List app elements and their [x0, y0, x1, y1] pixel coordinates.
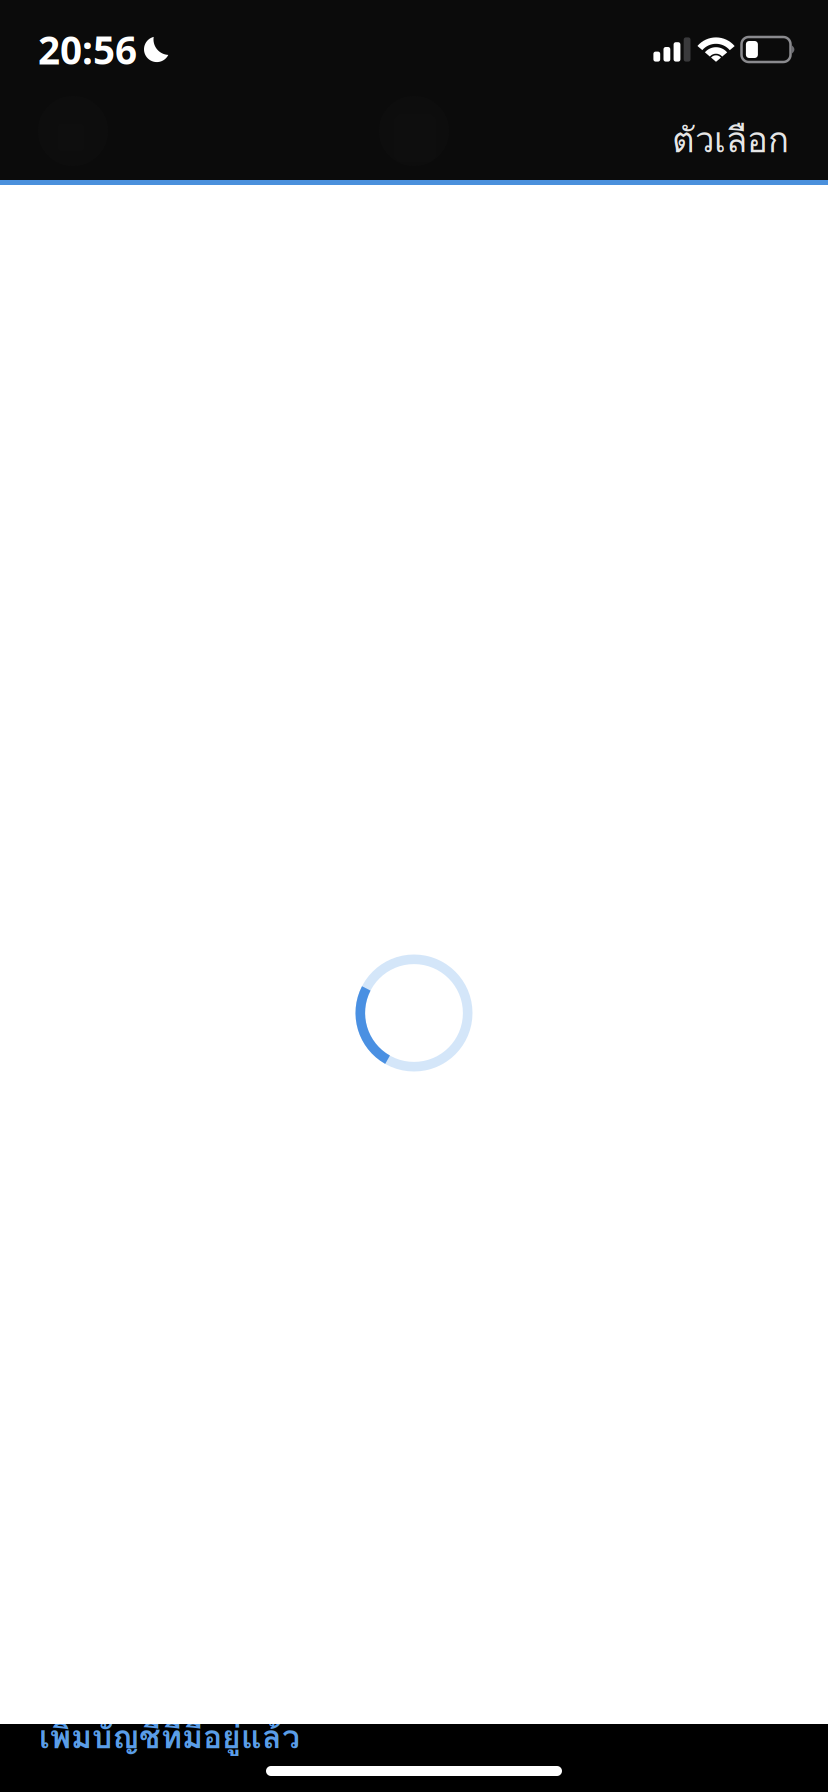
staticText: 20:56 [38, 24, 137, 75]
staticText: ตัวเลือก [672, 113, 789, 167]
button[interactable]: ตัวเลือก [658, 96, 803, 180]
staticText: เพิ่มบัญชีที่มีอยู่แล้ว [39, 1712, 300, 1762]
button[interactable]: เพิ่มบัญชีที่มีอยู่แล้ว [0, 1724, 828, 1766]
